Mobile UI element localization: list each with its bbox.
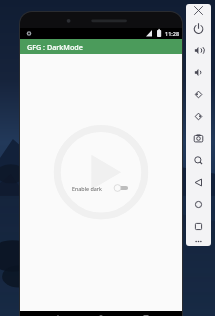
button[interactable]: Enable dark [68, 180, 134, 196]
button[interactable]: Home [186, 193, 211, 215]
button[interactable]: Rotate right [186, 105, 211, 127]
button[interactable]: Power [186, 17, 211, 39]
button[interactable]: Back [47, 311, 65, 316]
staticText: 11:28 [165, 30, 180, 37]
button[interactable]: Screenshot [186, 127, 211, 149]
button[interactable]: Volume up [186, 39, 211, 61]
button[interactable]: Back [186, 171, 211, 193]
staticText: Enable dark [72, 185, 102, 192]
button[interactable]: Enable dark mode toggle [114, 183, 130, 193]
staticText: GFG : DarkMode [27, 42, 83, 52]
button[interactable]: Close [186, 6, 211, 15]
button[interactable]: Home [92, 311, 110, 316]
button[interactable]: Rotate left [186, 83, 211, 105]
button[interactable]: Volume down [186, 61, 211, 83]
button[interactable]: Overview [186, 215, 211, 237]
button[interactable]: Zoom [186, 149, 211, 171]
button[interactable]: More [186, 237, 211, 246]
button[interactable]: Recent apps [137, 311, 155, 316]
button[interactable]: GFG : DarkMode [20, 39, 182, 54]
